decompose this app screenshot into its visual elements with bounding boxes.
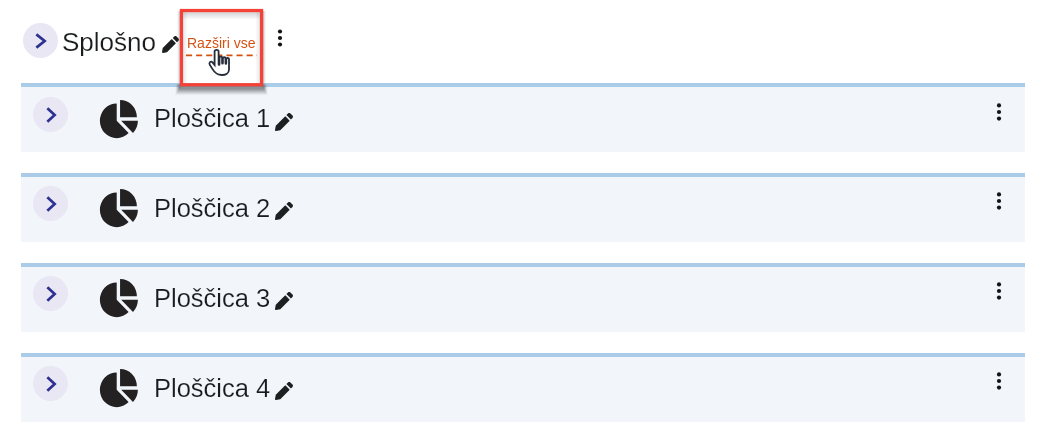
button[interactable]: Uredi ime razdelka <box>162 36 179 53</box>
button[interactable] <box>21 353 1025 422</box>
button[interactable]: Razširi ploščico 1 <box>33 97 68 132</box>
button[interactable]: Možnosti ploščice 4 <box>990 372 1008 390</box>
staticText: Splošno <box>62 27 156 56</box>
button[interactable] <box>21 173 1025 242</box>
button[interactable]: Razširi ploščico 2 <box>33 186 68 221</box>
staticText: Ploščica 3 <box>154 284 271 312</box>
button[interactable] <box>21 263 1025 332</box>
staticText: Razširi vse <box>187 35 256 51</box>
button[interactable]: Strni razdelek Splošno <box>23 23 58 58</box>
button[interactable]: Možnosti ploščice 2 <box>990 192 1008 210</box>
button[interactable]: Razširi ploščico 3 <box>33 276 68 311</box>
button[interactable]: Razširi ploščico 4 <box>33 366 68 401</box>
button[interactable] <box>21 83 1025 152</box>
staticText: Ploščica 2 <box>154 194 271 222</box>
button[interactable]: Možnosti ploščice 1 <box>990 103 1008 121</box>
button[interactable]: Uredi ime ploščice 2 <box>275 202 293 220</box>
button[interactable]: Uredi ime ploščice 3 <box>275 292 293 310</box>
staticText: Ploščica 1 <box>154 104 271 132</box>
button[interactable] <box>183 13 259 82</box>
staticText: Ploščica 4 <box>154 374 271 402</box>
button[interactable]: Možnosti ploščice 3 <box>990 282 1008 300</box>
button[interactable]: Uredi ime ploščice 4 <box>275 382 293 400</box>
button[interactable]: Uredi ime ploščice 1 <box>275 113 293 131</box>
button[interactable]: Možnosti razdelka <box>271 29 289 47</box>
